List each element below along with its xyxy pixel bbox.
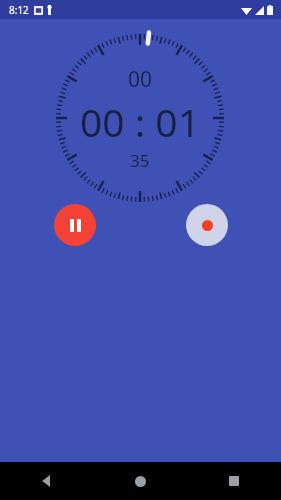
staticText: 00 [128,65,153,94]
button[interactable]: Pause [54,204,96,246]
button[interactable]: Home [93,462,187,500]
staticText: 00 : 01 [80,95,200,148]
button[interactable]: Lap [186,204,228,246]
staticText: 35 [130,149,150,172]
staticText: 8:12 [9,3,29,17]
button[interactable]: Recent apps [187,462,281,500]
button[interactable]: Back [0,462,93,500]
